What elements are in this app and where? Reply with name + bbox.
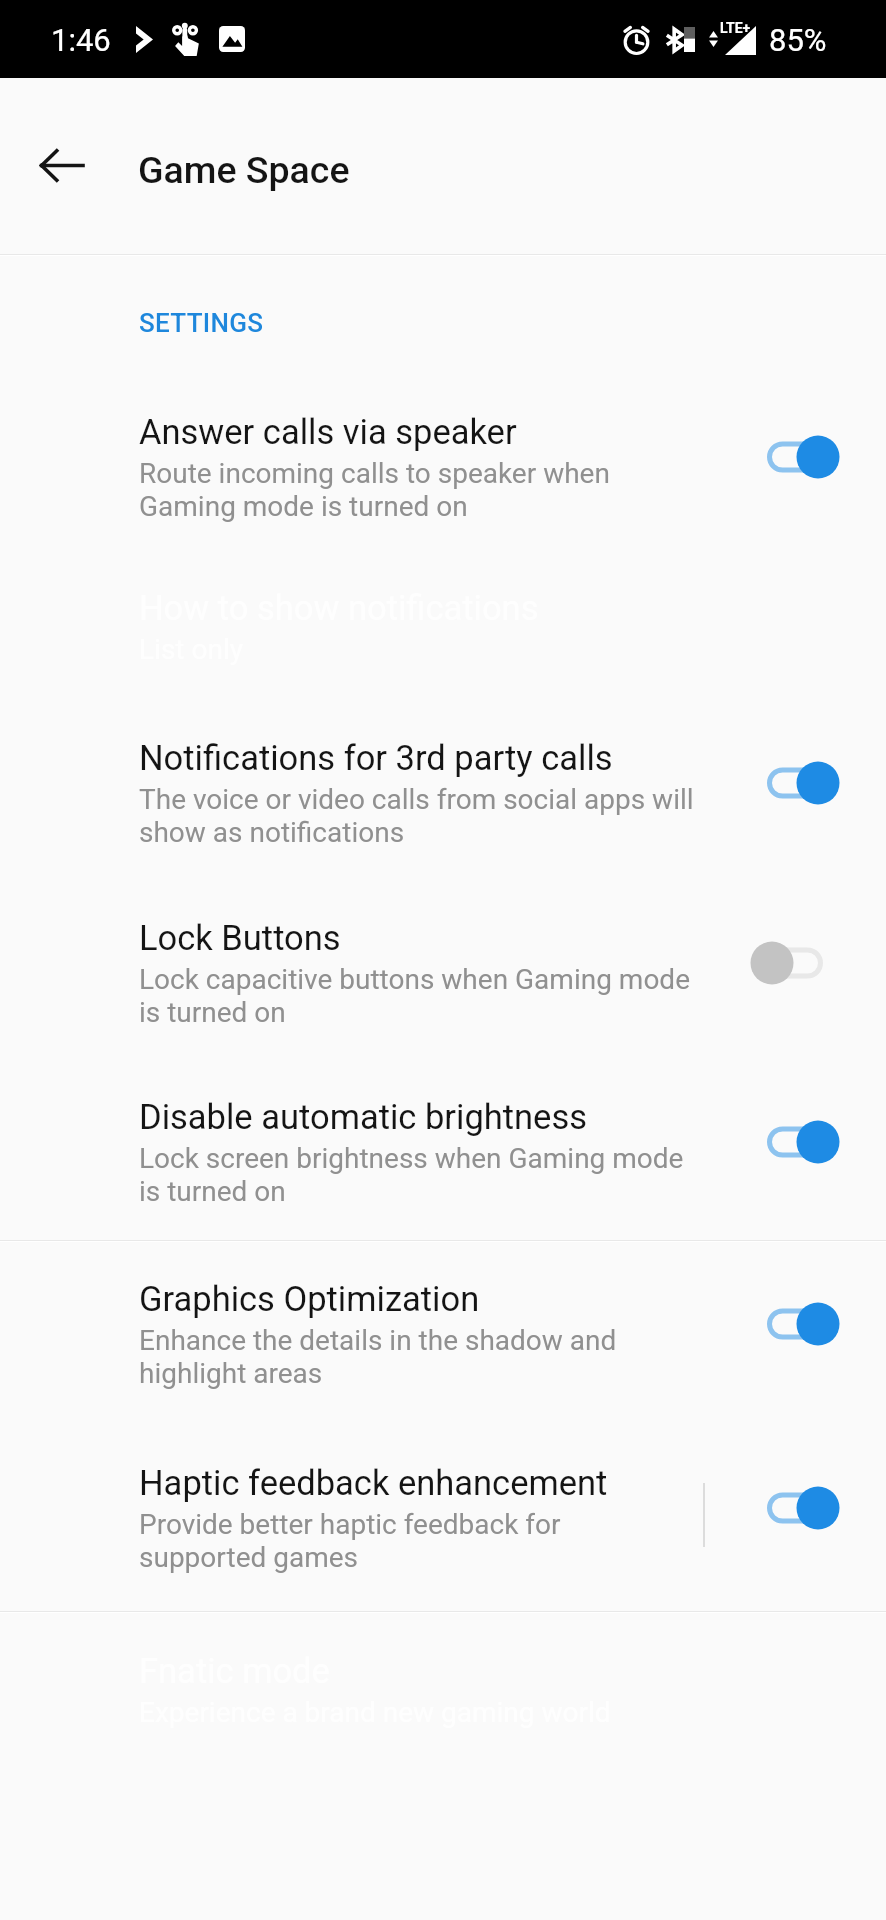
staticText: Disable automatic brightness [139,1097,588,1137]
staticText: Enhance the details in the shadow and hi… [139,1324,617,1390]
button[interactable]: Haptic feedback enhancement, on [773,1475,859,1541]
button[interactable]: Lock Buttons, off [773,930,859,996]
button[interactable]: Disable automatic brightness, on [773,1109,859,1175]
staticText: Graphics Optimization [139,1279,480,1319]
button[interactable]: Graphics Optimization [0,1205,886,1385]
staticText: SETTINGS [139,308,264,338]
staticText: 1:46 [51,22,111,58]
staticText: Route incoming calls to speaker when Gam… [139,457,610,523]
staticText: The voice or video calls from social app… [139,783,694,849]
button[interactable]: Disable automatic brightness [0,1023,886,1203]
button[interactable]: Lock Buttons [0,844,886,1024]
staticText: LTE+ [720,20,751,36]
staticText: Lock screen brightness when Gaming mode … [139,1142,684,1208]
button[interactable]: Haptic feedback enhancement [0,1389,886,1569]
staticText: Notifications for 3rd party calls [139,738,613,778]
button[interactable]: Graphics Optimization, on [773,1291,859,1357]
button[interactable]: Back [14,114,108,208]
staticText: Game Space [138,148,350,192]
staticText: Haptic feedback enhancement [139,1463,608,1503]
staticText: Lock capacitive buttons when Gaming mode… [139,963,691,1029]
button[interactable]: Answer calls via speaker [0,338,886,518]
staticText: Provide better haptic feedback for suppo… [139,1508,561,1574]
button[interactable]: Answer calls via speaker, on [773,424,859,490]
staticText: Lock Buttons [139,918,341,958]
button[interactable]: Notifications for 3rd party calls [0,664,886,844]
staticText: 85% [769,22,827,58]
staticText: Answer calls via speaker [139,412,517,452]
button[interactable]: Notifications for 3rd party calls, on [773,750,859,816]
